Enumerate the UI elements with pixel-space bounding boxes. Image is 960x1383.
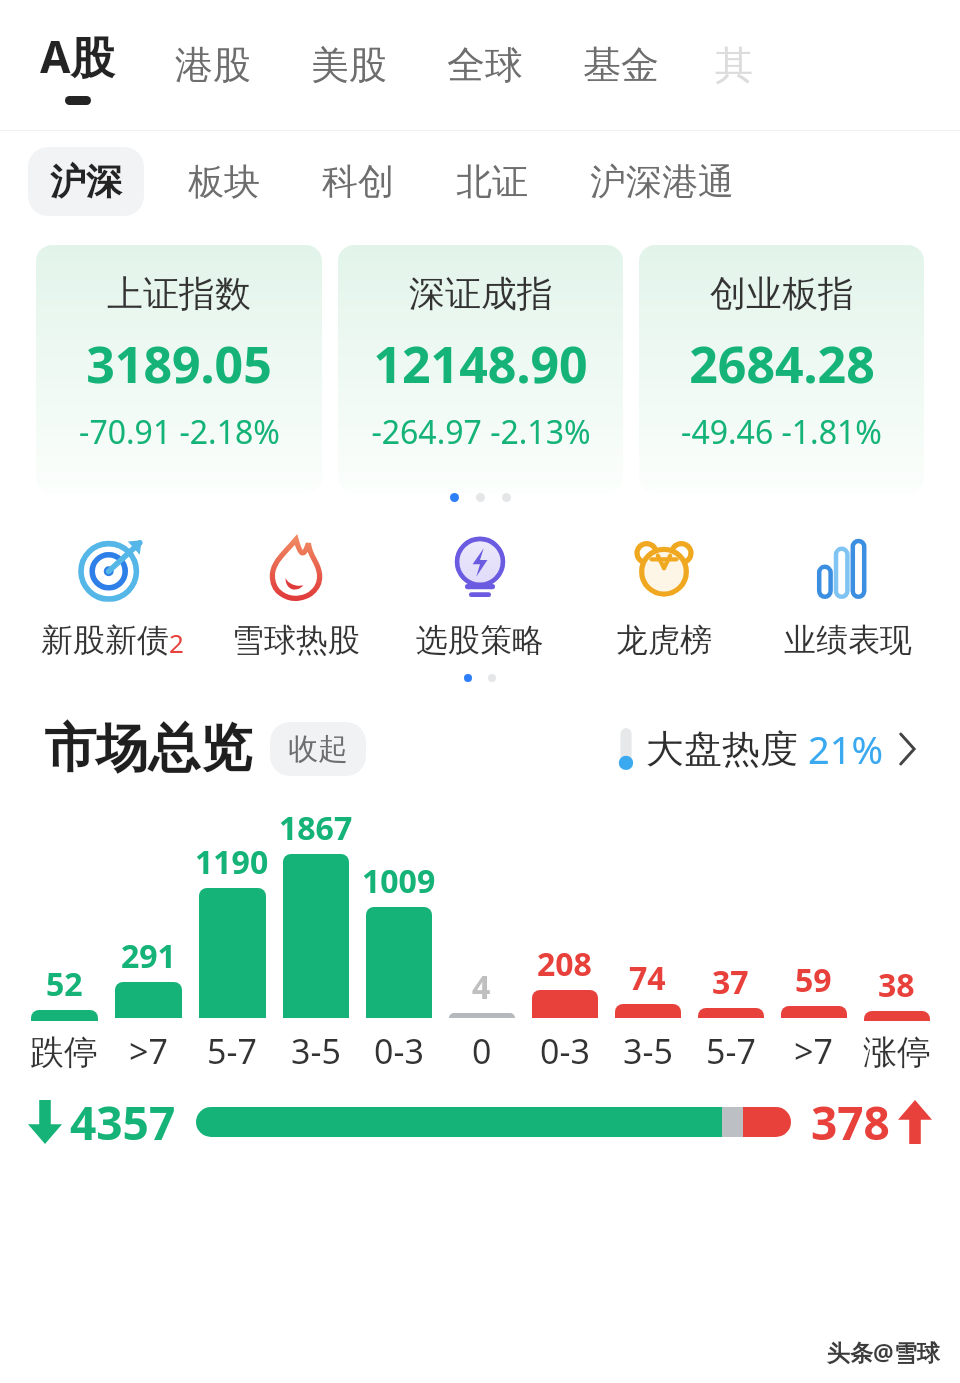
button[interactable]: 74 xyxy=(606,806,689,1074)
button[interactable]: 1009 xyxy=(357,806,440,1074)
staticText: 北证 xyxy=(456,159,528,204)
staticText: 2 xyxy=(169,625,184,660)
staticText: 1009 xyxy=(362,859,436,903)
button[interactable]: 深证成指 xyxy=(338,245,623,493)
button[interactable]: 业绩表现 xyxy=(756,532,940,660)
staticText: 沪深港通 xyxy=(590,159,734,204)
staticText: 科创 xyxy=(322,159,394,204)
staticText: -264.97 -2.13% xyxy=(371,410,591,454)
staticText: 基金 xyxy=(583,41,659,89)
staticText: 涨停 xyxy=(863,1031,931,1074)
button[interactable]: 收起 xyxy=(270,722,366,776)
staticText: 0-3 xyxy=(374,1028,424,1074)
button[interactable]: 大盘热度 xyxy=(618,723,916,775)
button[interactable]: 科创 xyxy=(322,147,394,216)
button[interactable]: 208 xyxy=(523,806,606,1074)
staticText: 0-3 xyxy=(540,1028,590,1074)
staticText: 收起 xyxy=(288,730,348,768)
button[interactable]: 1867 xyxy=(274,806,357,1074)
staticText: 4 xyxy=(472,965,491,1009)
staticText: 5-7 xyxy=(706,1028,756,1074)
staticText: >7 xyxy=(129,1028,168,1074)
staticText: 头条@雪球 xyxy=(827,1336,940,1367)
staticText: 港股 xyxy=(175,41,251,89)
staticText: 深证成指 xyxy=(409,271,553,316)
button[interactable]: A股 xyxy=(40,26,175,105)
staticText: 0 xyxy=(472,1028,492,1074)
staticText: 4357 xyxy=(70,1091,176,1154)
staticText: 美股 xyxy=(311,41,387,89)
staticText: -70.91 -2.18% xyxy=(79,410,280,454)
button[interactable]: 沪深 xyxy=(28,147,144,216)
button[interactable]: 其 xyxy=(715,41,813,89)
staticText: 跌停 xyxy=(30,1031,98,1074)
staticText: 板块 xyxy=(188,159,260,204)
button[interactable]: 沪深港通 xyxy=(590,147,734,216)
button[interactable]: 1190 xyxy=(190,806,274,1074)
button[interactable]: 全球 xyxy=(447,41,583,89)
staticText: 新股新债 xyxy=(41,620,169,660)
staticText: 21% xyxy=(808,723,884,775)
staticText: 2684.28 xyxy=(689,330,875,398)
button[interactable]: 52 xyxy=(22,809,106,1074)
staticText: 1867 xyxy=(279,806,353,850)
staticText: 3-5 xyxy=(623,1028,673,1074)
staticText: 龙虎榜 xyxy=(616,620,712,660)
button[interactable]: 291 xyxy=(106,806,190,1074)
staticText: 其 xyxy=(715,41,753,89)
staticText: 37 xyxy=(712,960,749,1004)
button[interactable]: 选股策略 xyxy=(388,532,572,660)
other: Advancing xyxy=(898,1100,932,1144)
button[interactable]: 北证 xyxy=(456,147,528,216)
staticText: 52 xyxy=(46,962,83,1006)
staticText: 1190 xyxy=(195,840,269,884)
staticText: 3-5 xyxy=(291,1028,341,1074)
button[interactable]: 37 xyxy=(689,806,772,1074)
staticText: 创业板指 xyxy=(710,271,854,316)
button[interactable]: 59 xyxy=(772,806,855,1074)
staticText: 雪球热股 xyxy=(232,620,360,660)
staticText: 选股策略 xyxy=(416,620,544,660)
button[interactable]: 港股 xyxy=(175,41,311,89)
button[interactable]: 美股 xyxy=(311,41,447,89)
button[interactable]: 38 xyxy=(855,809,938,1074)
staticText: 59 xyxy=(795,958,832,1002)
button[interactable]: 创业板指 xyxy=(639,245,924,493)
staticText: -49.46 -1.81% xyxy=(681,410,882,454)
button[interactable]: 龙虎榜 xyxy=(572,532,756,660)
button[interactable]: 板块 xyxy=(188,147,260,216)
staticText: >7 xyxy=(794,1028,833,1074)
button[interactable]: 上证指数 xyxy=(36,245,322,493)
staticText: 74 xyxy=(629,956,666,1000)
staticText: 12148.90 xyxy=(373,330,588,398)
staticText: 3189.05 xyxy=(86,330,272,398)
button[interactable]: 新股新债 xyxy=(20,532,204,660)
staticText: 5-7 xyxy=(207,1028,257,1074)
staticText: 208 xyxy=(537,942,592,986)
button[interactable]: 4 xyxy=(440,806,523,1074)
staticText: 沪深 xyxy=(50,159,122,204)
staticText: 38 xyxy=(878,963,915,1007)
button[interactable]: 雪球热股 xyxy=(204,532,388,660)
staticText: 291 xyxy=(121,934,176,978)
other: Declining xyxy=(28,1100,62,1144)
staticText: 全球 xyxy=(447,41,523,89)
button[interactable]: 基金 xyxy=(583,41,715,89)
staticText: 业绩表现 xyxy=(784,620,912,660)
staticText: 市场总览 xyxy=(44,716,252,782)
staticText: A股 xyxy=(40,26,115,86)
staticText: 大盘热度 xyxy=(646,725,798,773)
staticText: 378 xyxy=(811,1091,890,1154)
staticText: 上证指数 xyxy=(107,271,251,316)
